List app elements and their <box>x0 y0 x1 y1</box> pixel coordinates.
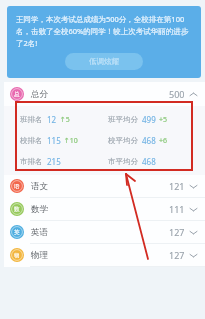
staticText: 121 <box>169 180 185 192</box>
staticText: 校排名 <box>20 136 43 145</box>
staticText: ↑10 <box>64 136 78 146</box>
staticText: 499 <box>142 114 156 125</box>
staticText: 127 <box>169 249 185 261</box>
staticText: 500 <box>169 88 185 100</box>
staticText: 低调炫耀 <box>89 57 119 66</box>
button[interactable]: 总 <box>4 82 205 106</box>
staticText: 215 <box>47 156 61 167</box>
staticText: 总分 <box>31 89 48 100</box>
staticText: ↑5 <box>60 115 70 125</box>
staticText: 校平均分 <box>108 136 138 145</box>
staticText: 王同学，本次考试总成绩为500分，全校排在第100名，击败了全校60%的同学！较… <box>16 14 192 48</box>
staticText: 班平均分 <box>108 115 138 124</box>
staticText: 数学 <box>31 204 48 215</box>
staticText: 468 <box>142 156 156 167</box>
staticText: 111 <box>169 203 185 215</box>
staticText: 物理 <box>31 250 48 261</box>
button[interactable]: 英 <box>4 221 205 243</box>
staticText: 总 <box>14 91 20 98</box>
staticText: 英 <box>14 229 20 236</box>
button[interactable]: 低调炫耀 <box>65 53 143 70</box>
staticText: 市平均分 <box>108 157 138 166</box>
button[interactable]: 物 <box>4 244 205 266</box>
staticText: 468 <box>142 135 156 146</box>
staticText: 数 <box>14 206 20 213</box>
staticText: 市排名 <box>20 157 43 166</box>
staticText: 12 <box>47 114 57 125</box>
staticText: +6 <box>159 136 168 146</box>
button[interactable]: 语 <box>4 175 205 197</box>
staticText: 物 <box>14 252 20 259</box>
staticText: 127 <box>169 226 185 238</box>
staticText: 班排名 <box>20 115 43 124</box>
button[interactable]: 数 <box>4 198 205 220</box>
staticText: 英语 <box>31 227 48 238</box>
staticText: 语文 <box>31 181 48 192</box>
staticText: 115 <box>47 135 61 146</box>
staticText: 语 <box>14 183 20 190</box>
staticText: +5 <box>159 115 168 125</box>
